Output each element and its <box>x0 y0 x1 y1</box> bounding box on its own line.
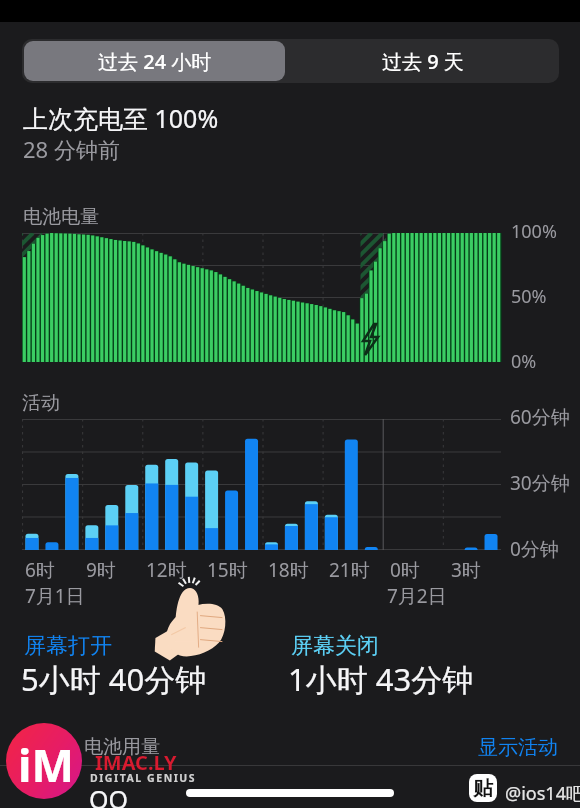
staticText: 9时 <box>86 557 116 583</box>
staticText: 过去 24 小时 <box>98 48 212 75</box>
staticText: 7月2日 <box>387 583 447 609</box>
button[interactable]: 过去 24 小时 <box>24 41 285 81</box>
staticText: @ios14吧 <box>505 781 580 806</box>
staticText: 60分钟 <box>510 404 570 430</box>
staticText: 屏幕打开 <box>24 632 112 660</box>
staticText: 30分钟 <box>510 470 570 496</box>
staticText: 21时 <box>329 557 370 583</box>
staticText: 15时 <box>207 557 248 583</box>
staticText: 0分钟 <box>510 536 559 562</box>
staticText: 电池电量 <box>23 205 99 229</box>
staticText: 贴 <box>473 776 493 801</box>
staticText: 屏幕关闭 <box>291 632 379 660</box>
staticText: 12时 <box>146 557 187 583</box>
other: Tieba <box>469 774 497 802</box>
staticText: IMAC.LY <box>95 749 177 776</box>
staticText: 94% <box>474 800 526 808</box>
staticText: 5小时 40分钟 <box>21 658 207 700</box>
staticText: 28 分钟前 <box>23 134 120 164</box>
staticText: 显示活动 <box>478 735 558 760</box>
staticText: 上次充电至 100% <box>23 101 219 135</box>
staticText: 活动 <box>22 391 60 415</box>
staticText: 3时 <box>451 557 481 583</box>
staticText: 100% <box>511 219 557 244</box>
staticText: QQ <box>89 782 129 808</box>
button[interactable]: 显示活动 <box>474 731 564 763</box>
button[interactable]: 过去 9 天 <box>289 41 557 81</box>
staticText: 1小时 43分钟 <box>288 658 474 700</box>
staticText: iM <box>18 734 74 795</box>
staticText: 50% <box>511 284 547 309</box>
staticText: 过去 9 天 <box>382 48 464 75</box>
staticText: 电池用量 <box>84 735 160 759</box>
staticText: 7月1日 <box>25 583 85 609</box>
staticText: 18时 <box>268 557 309 583</box>
staticText: 6时 <box>25 557 55 583</box>
staticText: 0% <box>511 349 537 374</box>
staticText: DIGITAL GENIUS <box>90 771 197 785</box>
staticText: 0时 <box>390 557 420 583</box>
